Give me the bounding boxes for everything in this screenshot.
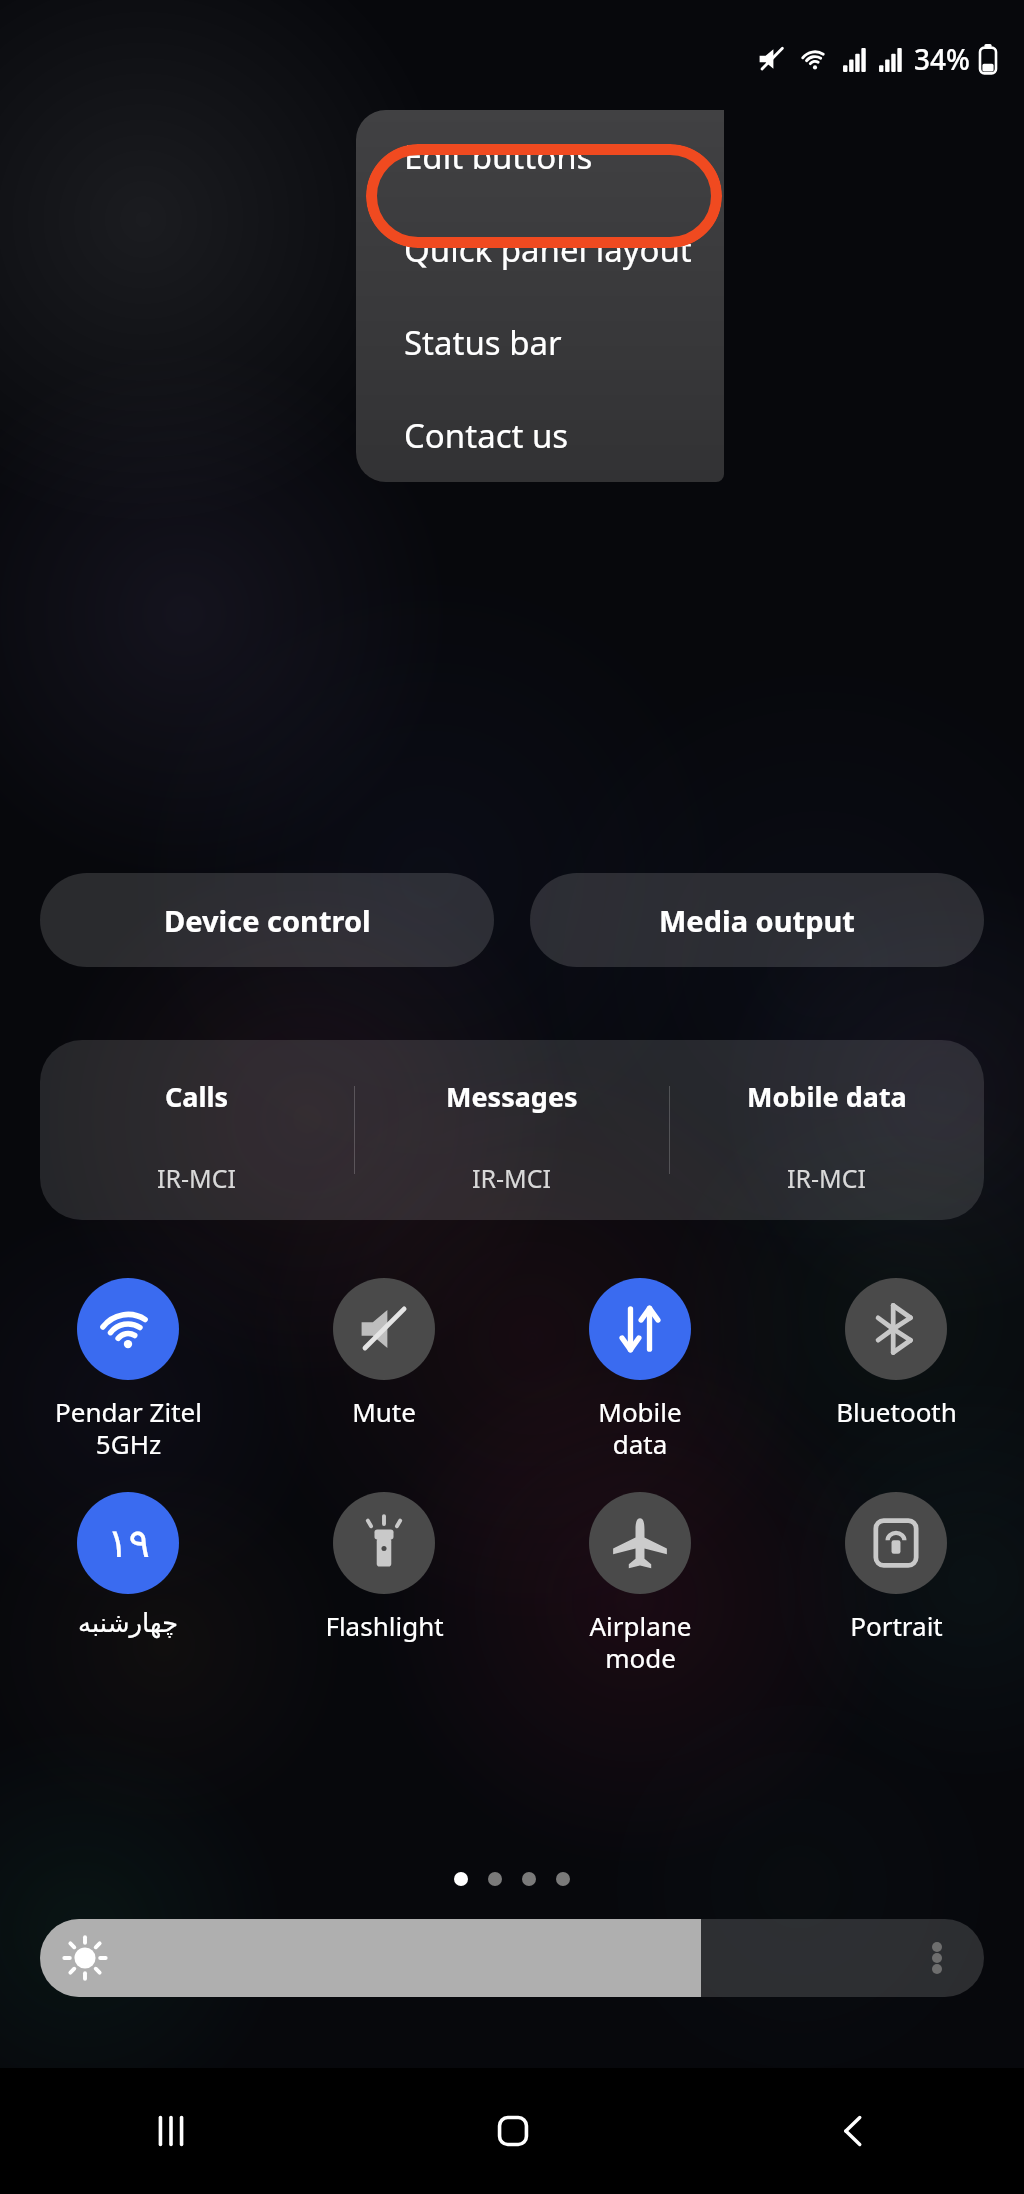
staticText: Calls [165, 1078, 229, 1115]
staticText: Portrait [850, 1608, 943, 1643]
staticText: Airplane mode [589, 1608, 692, 1676]
staticText: IR-MCI [157, 1161, 237, 1195]
staticText: Flashlight [325, 1608, 444, 1643]
staticText: Quick panel layout [404, 227, 692, 272]
staticText: IR-MCI [787, 1161, 867, 1195]
button[interactable]: Calendar [0, 1492, 256, 1638]
button[interactable]: Flashlight [256, 1492, 512, 1643]
button[interactable]: Back [683, 2068, 1024, 2194]
button[interactable]: Device control [40, 873, 494, 967]
staticText: IR-MCI [472, 1161, 552, 1195]
button[interactable]: Status bar [356, 296, 724, 389]
staticText: 34% [914, 40, 970, 78]
button[interactable]: Edit buttons [356, 110, 724, 203]
button[interactable]: Brightness options [40, 1919, 984, 1997]
staticText: Contact us [404, 413, 569, 458]
button[interactable]: Calls [40, 1040, 984, 1220]
button[interactable]: Contact us [356, 389, 724, 482]
staticText: Mute [352, 1394, 416, 1429]
staticText: Device control [164, 901, 371, 940]
button[interactable]: Airplane mode [512, 1492, 768, 1676]
staticText: ۱۹ [107, 1520, 150, 1567]
button[interactable]: Portrait [768, 1492, 1024, 1643]
button[interactable]: Quick panel layout [356, 203, 724, 296]
button[interactable]: Mobile data [512, 1278, 768, 1462]
button[interactable]: Recents [0, 2068, 342, 2194]
button[interactable]: Brightness options [920, 1941, 954, 1975]
staticText: Bluetooth [836, 1394, 957, 1429]
staticText: Status bar [404, 320, 562, 365]
staticText: چهارشنبه [78, 1608, 178, 1638]
staticText: 6:08 [432, 322, 593, 434]
button[interactable]: Bluetooth [768, 1278, 1024, 1429]
button[interactable]: Media output [530, 873, 984, 967]
button[interactable]: Mute [256, 1278, 512, 1429]
staticText: Edit buttons [404, 134, 593, 179]
button[interactable]: Pendar Zitel 5GHz [0, 1278, 256, 1462]
staticText: Messages [446, 1078, 578, 1115]
staticText: Media output [659, 901, 855, 940]
button[interactable]: Home [342, 2068, 683, 2194]
staticText: Pendar Zitel 5GHz [55, 1394, 202, 1462]
staticText: Mobile data [598, 1394, 682, 1462]
staticText: Wed, October 11 [390, 438, 634, 480]
staticText: Mobile data [747, 1078, 907, 1115]
